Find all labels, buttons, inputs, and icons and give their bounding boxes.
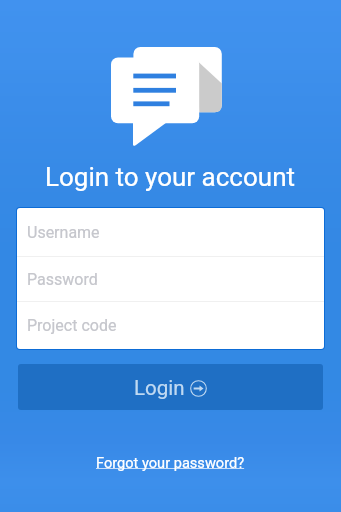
staticText: Password	[27, 270, 98, 289]
button[interactable]: Password	[17, 257, 324, 301]
button[interactable]: Login	[18, 364, 323, 410]
staticText: Username	[27, 223, 100, 242]
staticText: Forgot your password?	[96, 454, 245, 471]
staticText: Login	[134, 376, 185, 400]
button[interactable]: Forgot your password?	[90, 451, 251, 474]
button[interactable]: Username	[17, 208, 324, 256]
staticText: Login to your account	[45, 162, 296, 192]
button[interactable]: Project code	[17, 302, 324, 349]
staticText: Project code	[27, 316, 117, 335]
